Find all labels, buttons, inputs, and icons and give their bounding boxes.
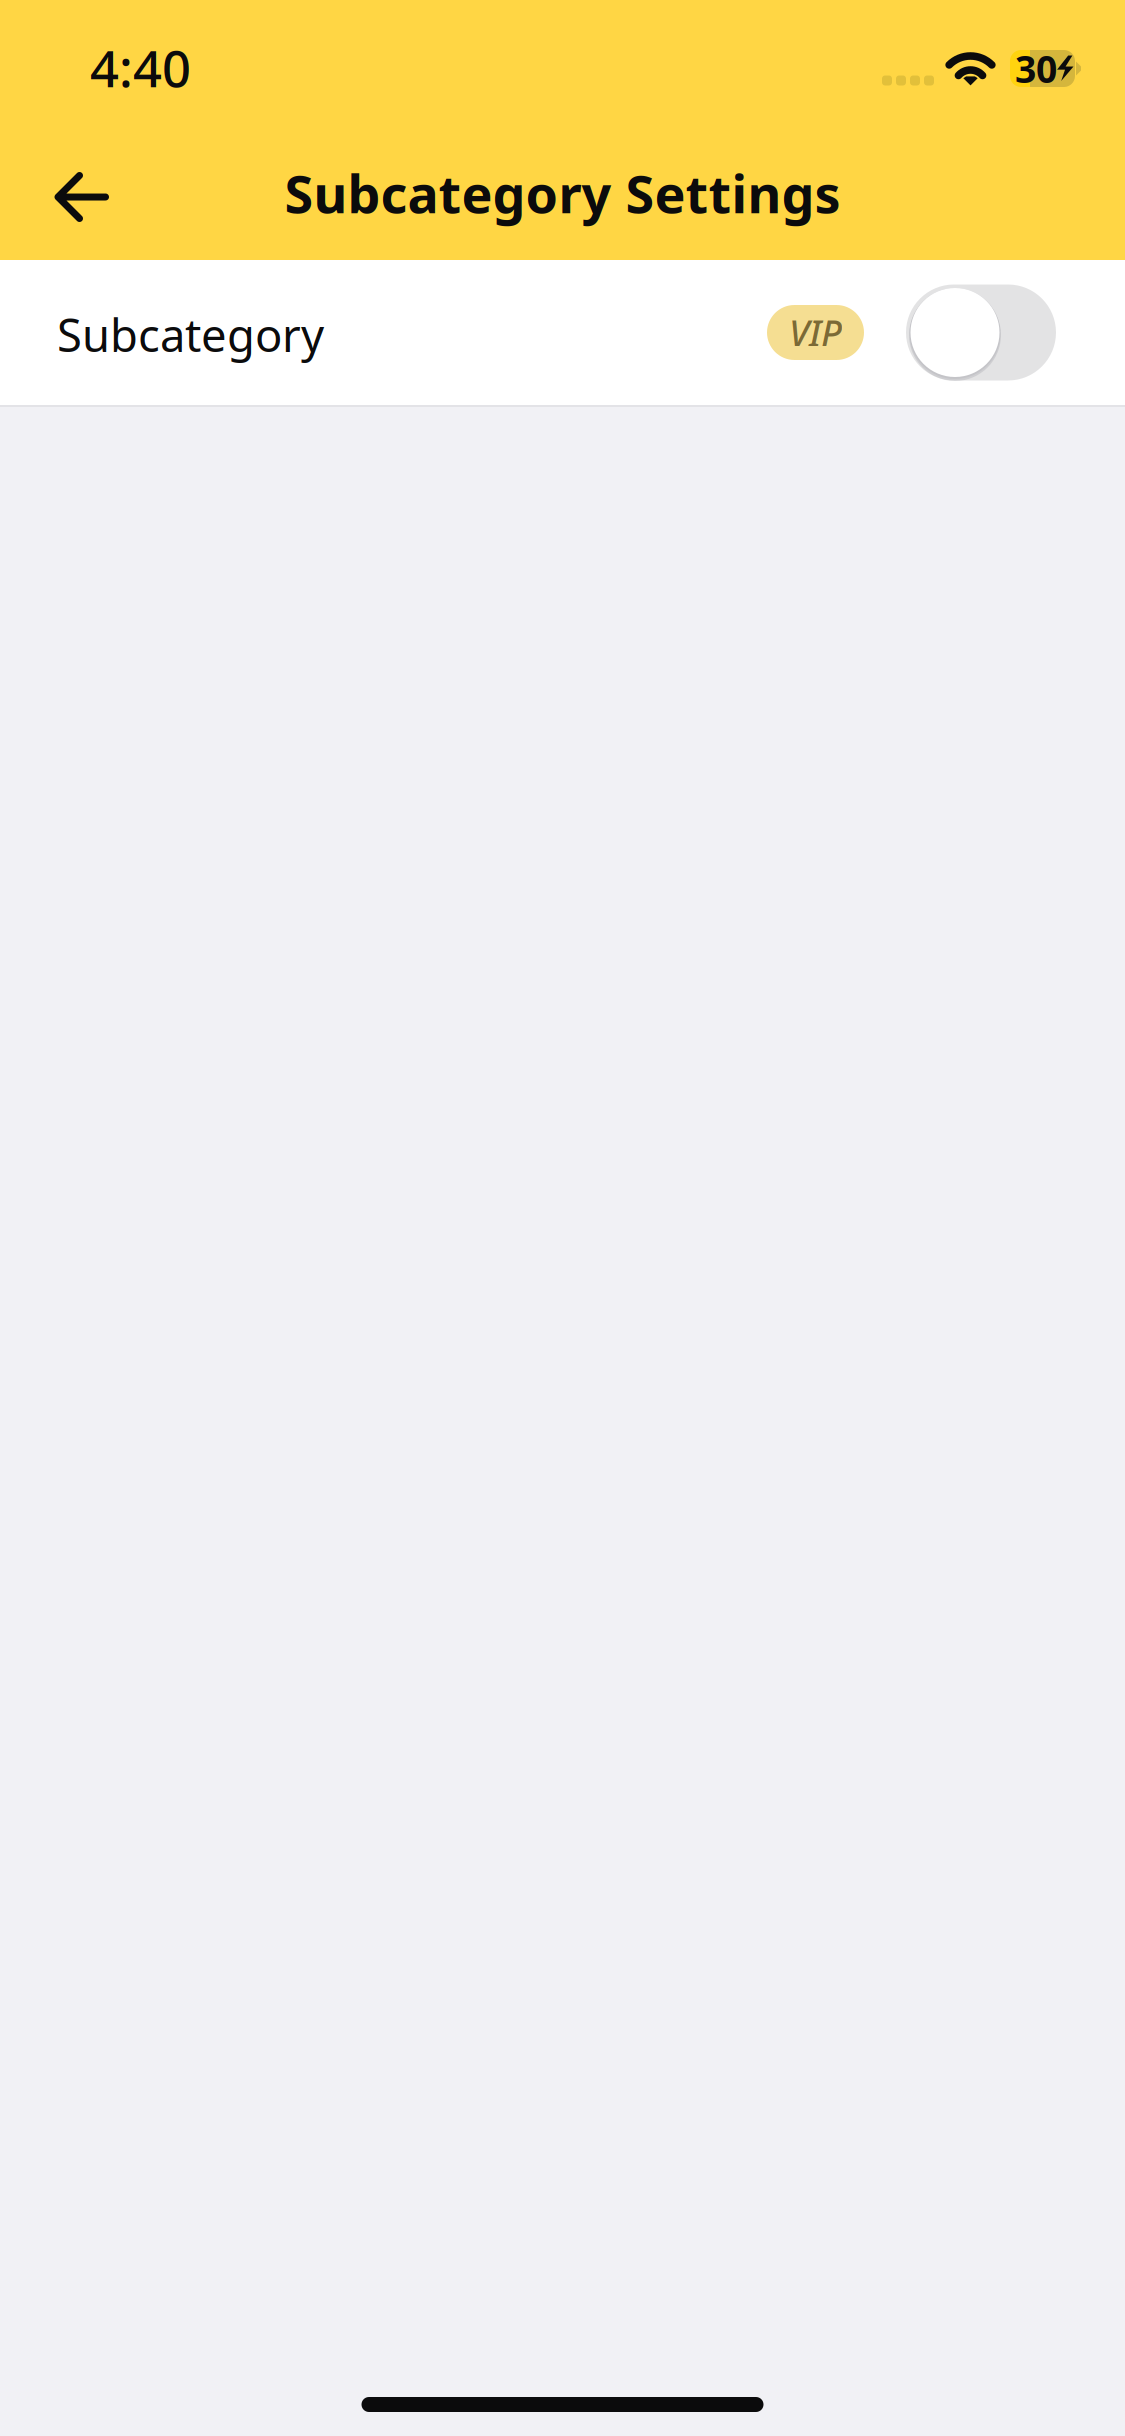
staticText: Subcategory Settings	[284, 158, 840, 228]
staticText: 30	[1015, 44, 1057, 93]
staticText: VIP	[789, 309, 842, 356]
staticText: 4:40	[90, 34, 191, 101]
button[interactable]: Back	[0, 152, 109, 242]
staticText: Subcategory	[57, 304, 324, 365]
button[interactable]: Subcategory toggle	[906, 284, 1056, 380]
